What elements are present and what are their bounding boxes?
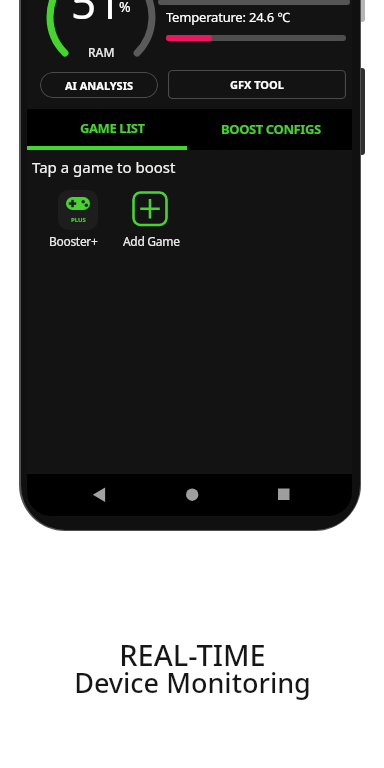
staticText: GFX TOOL (230, 77, 284, 92)
button[interactable] (254, 474, 314, 516)
staticText: PLUS (71, 216, 86, 224)
staticText: % (119, 0, 131, 16)
button[interactable]: BOOST CONFIGS (189, 108, 352, 149)
staticText: Booster+ (49, 233, 98, 249)
button[interactable] (69, 474, 129, 516)
staticText: 51 (71, 0, 122, 30)
button[interactable]: GAME LIST (34, 108, 190, 147)
button[interactable] (162, 474, 222, 516)
button[interactable]: PLUS (58, 190, 98, 230)
staticText: Device Monitoring (74, 664, 311, 701)
staticText: BOOST CONFIGS (221, 120, 321, 138)
staticText: AI ANALYSIS (65, 78, 134, 93)
button[interactable]: AI ANALYSIS (40, 72, 158, 98)
staticText: REAL-TIME (119, 635, 266, 674)
staticText: Temperature: 24.6 ℃ (166, 8, 290, 26)
button[interactable]: GFX TOOL (168, 70, 346, 99)
staticText: Tap a game to boost (32, 157, 176, 177)
staticText: Add Game (123, 233, 180, 249)
staticText: RAM (88, 44, 115, 60)
button[interactable] (132, 191, 168, 227)
staticText: GAME LIST (80, 119, 145, 137)
